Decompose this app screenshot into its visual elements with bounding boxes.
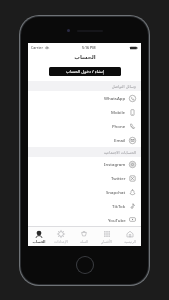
staticText: Carrier <box>31 45 43 50</box>
staticText: Email <box>114 137 126 143</box>
staticText: WhatsApp <box>104 95 126 101</box>
staticText: Snapchat <box>106 189 126 195</box>
staticText: الحساب <box>74 54 96 61</box>
button[interactable]: إنشاء / دخول الحساب <box>49 67 121 76</box>
button[interactable]: Phone <box>28 119 141 133</box>
button[interactable]: الحساب <box>28 227 50 246</box>
button[interactable]: Mobile <box>28 105 141 119</box>
button[interactable]: الأقسام <box>95 227 118 246</box>
staticText: وسائل التواصل <box>111 84 136 89</box>
button[interactable]: Snapchat <box>28 185 141 199</box>
staticText: Instagram <box>104 161 126 167</box>
staticText: السلة <box>80 240 88 244</box>
staticText: Mobile <box>111 109 126 115</box>
button[interactable]: Twitter <box>28 171 141 185</box>
button[interactable]: Email <box>28 133 141 147</box>
button[interactable]: Instagram <box>28 157 141 171</box>
button[interactable]: الرئيسية <box>118 227 141 246</box>
staticText: YouTube <box>108 217 126 223</box>
staticText: TikTok <box>112 203 126 209</box>
button[interactable]: WhatsApp <box>28 91 141 105</box>
button[interactable]: الإعدادات <box>50 227 72 246</box>
staticText: الأقسام <box>101 240 112 244</box>
button[interactable]: TikTok <box>28 199 141 213</box>
button[interactable]: السلة <box>72 227 95 246</box>
staticText: Phone <box>112 123 126 129</box>
staticText: الإعدادات <box>54 240 68 244</box>
staticText: الحساب <box>32 240 46 244</box>
staticText: إنشاء / دخول الحساب <box>66 69 104 75</box>
staticText: 5:16 PM <box>82 45 96 50</box>
staticText: الحسابات الاجتماعية <box>103 150 136 155</box>
button[interactable]: YouTube <box>28 213 141 226</box>
staticText: Twitter <box>111 175 126 181</box>
staticText: الرئيسية <box>124 240 136 244</box>
